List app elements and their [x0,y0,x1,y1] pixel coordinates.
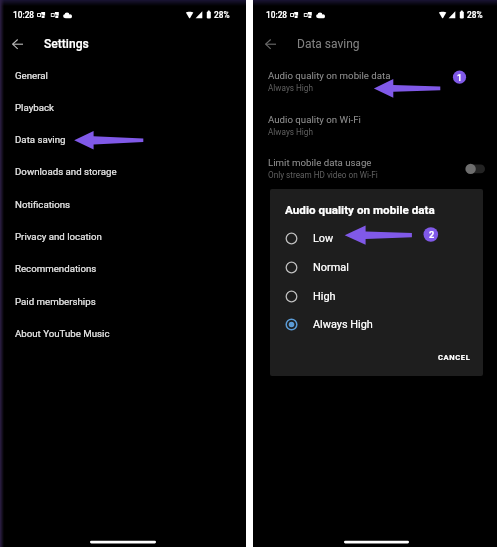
staticText: High [313,290,336,303]
button[interactable]: Recommendations [0,252,246,284]
staticText: Always High [268,83,313,93]
staticText: Limit mobile data usage [268,157,372,168]
staticText: Audio quality on Wi-Fi [268,114,361,125]
staticText: Only stream HD video on Wi-Fi [268,170,378,180]
button[interactable]: Back [0,30,34,58]
button[interactable]: Privacy and location [0,220,246,252]
button[interactable]: Back [253,30,287,58]
staticText: Downloads and storage [15,166,117,177]
staticText: Paid memberships [15,296,96,307]
staticText: 2 [429,229,435,240]
staticText: General [15,70,48,81]
button[interactable]: General [0,59,246,91]
staticText: Recommendations [15,263,97,274]
button[interactable]: Playback [0,91,246,123]
staticText: Data saving [297,37,360,51]
staticText: Notifications [15,199,71,210]
staticText: Audio quality on mobile data [285,203,435,217]
staticText: Always High [313,318,373,331]
staticText: Privacy and location [15,231,102,242]
button[interactable]: Back [0,30,246,58]
staticText: 10:28 [266,10,288,20]
staticText: Playback [15,102,54,113]
button[interactable]: Notifications [0,188,246,220]
staticText: 10:28 [13,10,35,20]
button[interactable]: Always High [270,310,483,339]
button[interactable]: Back [253,30,497,58]
button[interactable]: Normal [270,253,483,282]
button[interactable]: Audio quality on mobile data [268,70,497,93]
staticText: Settings [44,37,89,51]
button[interactable]: Data saving [0,123,246,155]
button[interactable]: Downloads and storage [0,155,246,187]
staticText: CANCEL [438,353,471,362]
button[interactable]: High [270,282,483,311]
staticText: Always High [268,127,313,137]
staticText: Data saving [15,134,66,145]
button[interactable]: Low [270,224,483,253]
button[interactable]: Paid memberships [0,285,246,317]
staticText: About YouTube Music [15,328,110,339]
button[interactable]: About YouTube Music [0,317,246,349]
staticText: 28% [214,10,230,20]
staticText: Normal [313,261,349,274]
button[interactable]: Limit mobile data usage [268,157,497,180]
staticText: 1 [457,73,462,83]
staticText: Audio quality on mobile data [268,70,391,81]
button[interactable]: CANCEL [434,349,475,366]
staticText: 28% [467,10,483,20]
button[interactable]: Audio quality on Wi-Fi [268,114,497,137]
staticText: Low [313,232,334,245]
